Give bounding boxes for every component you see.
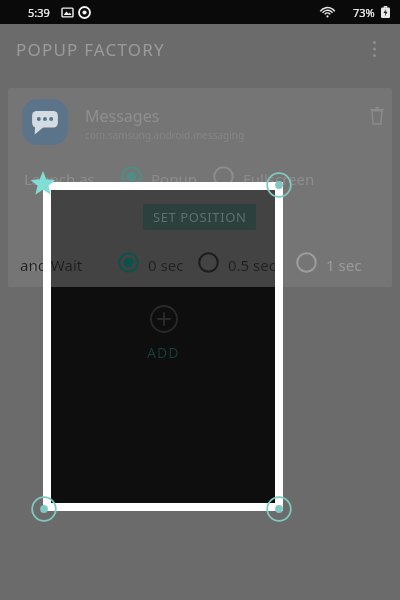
staticText: SET POSITION [161, 208, 255, 226]
staticText: Launch as [24, 169, 95, 189]
button[interactable]: Anchor handle [30, 171, 56, 197]
staticText: Fullscreen [243, 169, 315, 189]
staticText: ADD [147, 343, 180, 362]
button[interactable]: SET POSITION [151, 204, 264, 230]
button[interactable]: Delete [360, 98, 392, 132]
staticText: and Wait [28, 255, 91, 275]
button[interactable]: Resize handle top right [266, 172, 292, 198]
button[interactable]: Resize handle bottom left [31, 496, 57, 522]
staticText: 73% [353, 5, 375, 20]
button[interactable]: ADD [147, 305, 180, 362]
staticText: 5:39 [28, 5, 50, 20]
button[interactable]: Messages [8, 88, 392, 287]
staticText: SET POSITION [153, 208, 247, 226]
button[interactable]: SET POSITION [143, 204, 256, 230]
button[interactable]: Resize handle bottom right [266, 496, 292, 522]
staticText: 0 sec [148, 255, 184, 275]
staticText: 0.5 sec [236, 255, 284, 275]
staticText: 0.5 sec [228, 255, 276, 275]
staticText: 0 sec [156, 255, 192, 275]
button[interactable]: More options [356, 31, 392, 67]
staticText: Messages [85, 105, 160, 127]
staticText: and Wait [20, 255, 83, 275]
staticText: 1 sec [326, 255, 362, 275]
staticText: com.samsung.android.messaging [85, 128, 245, 142]
staticText: POPUP FACTORY [16, 38, 165, 61]
staticText: Popup [151, 169, 197, 189]
